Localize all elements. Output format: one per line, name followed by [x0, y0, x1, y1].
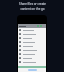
button[interactable] — [18, 56, 46, 60]
button[interactable] — [18, 48, 46, 52]
staticText: Share files or create — [19, 2, 46, 6]
button[interactable] — [18, 52, 46, 56]
button[interactable] — [18, 40, 46, 44]
button[interactable] — [18, 60, 46, 64]
button[interactable] — [18, 36, 46, 40]
button[interactable]: Continue — [28, 69, 37, 71]
button[interactable] — [18, 28, 46, 32]
button[interactable] — [18, 44, 46, 48]
button[interactable] — [18, 32, 46, 36]
button[interactable] — [18, 24, 46, 28]
staticText: content on the go — [20, 7, 45, 11]
